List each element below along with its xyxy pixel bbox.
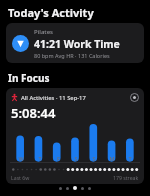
staticText: Today's Activity (8, 5, 94, 20)
staticText: S (74, 155, 78, 162)
staticText: W (18, 155, 24, 162)
button[interactable]: Pilates (6, 23, 144, 63)
staticText: Pilates (34, 28, 53, 36)
staticText: In Focus (8, 71, 50, 85)
staticText: 179 streak (113, 174, 139, 181)
staticText: 5:08:44 (11, 104, 56, 122)
staticText: F (57, 155, 60, 162)
staticText: T (128, 155, 132, 162)
staticText: All Activities · 11 Sep-17 (21, 94, 86, 102)
button[interactable]: Add activity (129, 92, 140, 103)
staticText: M (109, 155, 115, 162)
staticText: Last 6w (11, 174, 30, 181)
staticText: S (92, 155, 96, 162)
staticText: T (38, 155, 42, 162)
button[interactable]: All Activities · 11 Sep-17 (6, 88, 144, 184)
staticText: 80 bpm Avg HR · 131 Calories (34, 52, 110, 59)
staticText: 41:21 Work Time (34, 37, 120, 51)
